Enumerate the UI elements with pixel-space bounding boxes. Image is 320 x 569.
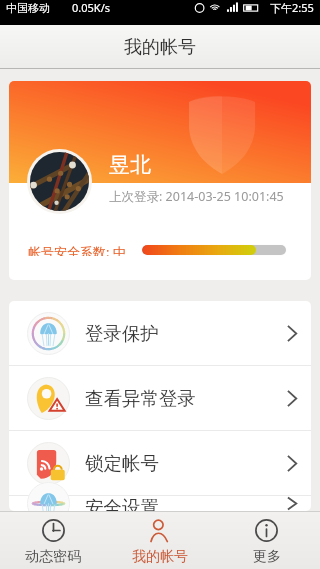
other: 我的帐号 [148, 519, 171, 542]
staticText: 登录保护 [85, 322, 159, 345]
staticText: 中国移动 [6, 1, 50, 15]
button[interactable]: 登录保护 [9, 301, 311, 365]
staticText: 更多 [253, 548, 281, 566]
staticText: 下午2:55 [270, 0, 314, 15]
staticText: 我的帐号 [124, 36, 196, 59]
button[interactable]: 动态密码 [0, 511, 106, 566]
button[interactable]: 查看异常登录 [9, 366, 311, 430]
other: 动态密码 [42, 519, 65, 542]
staticText: 安全设置 [85, 496, 159, 511]
staticText: 动态密码 [25, 548, 81, 566]
button[interactable]: 安全设置 [9, 496, 311, 511]
staticText: 昱北 [109, 152, 151, 178]
staticText: 查看异常登录 [85, 387, 196, 410]
staticText: 上次登录: 2014-03-25 10:01:45 [109, 188, 284, 205]
staticText: 锁定帐号 [85, 452, 159, 475]
button[interactable]: 锁定帐号 [9, 431, 311, 495]
other: 更多 [255, 519, 278, 542]
staticText: 我的帐号 [132, 548, 188, 566]
button[interactable]: 更多 [213, 511, 320, 566]
staticText: 帐号安全系数: 中 [28, 243, 126, 256]
button[interactable]: 我的帐号 [106, 511, 213, 566]
staticText: 0.05K/s [72, 0, 110, 15]
